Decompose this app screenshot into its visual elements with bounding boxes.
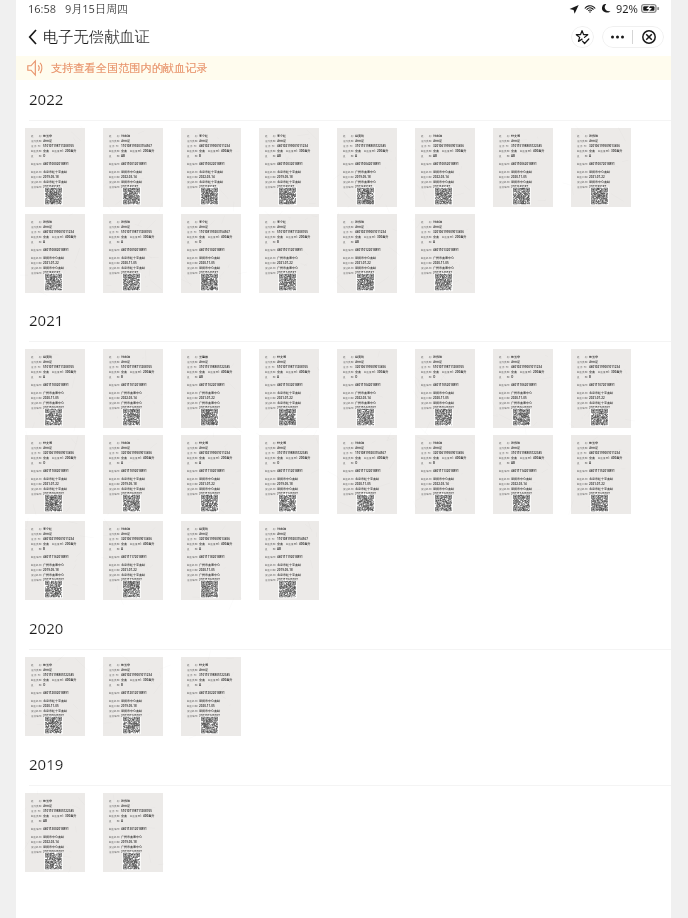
- staticText: 姓 名:: [109, 134, 120, 137]
- button[interactable]: 姓 名:: [337, 128, 397, 207]
- staticText: 身份证: [121, 225, 130, 229]
- button[interactable]: Favorite: [571, 26, 594, 48]
- button[interactable]: 姓 名:: [25, 435, 85, 514]
- button[interactable]: 姓 名:: [571, 435, 631, 514]
- staticText: 深圳市中心血站: [433, 401, 454, 405]
- button[interactable]: 姓 名:: [493, 128, 553, 207]
- staticText: 深圳市中心血站: [589, 170, 610, 174]
- staticText: 320110049187: [43, 406, 64, 410]
- button[interactable]: 姓 名:: [259, 128, 319, 207]
- staticText: B: [589, 375, 591, 379]
- button[interactable]: 姓 名:: [259, 214, 319, 293]
- button[interactable]: 姓 名:: [337, 214, 397, 293]
- button[interactable]: 姓 名:: [259, 435, 319, 514]
- staticText: 血 型:: [187, 154, 198, 157]
- staticText: A: [43, 240, 46, 244]
- button[interactable]: 姓 名:: [415, 349, 475, 428]
- staticText: 献血日期:: [31, 704, 42, 707]
- staticText: 姓 名:: [343, 355, 354, 358]
- staticText: 献血机构:: [421, 391, 432, 394]
- staticText: 证书编号:: [499, 185, 510, 188]
- staticText: 北京市红十字血站: [43, 709, 67, 713]
- button[interactable]: 姓 名:: [103, 435, 163, 514]
- staticText: 发证机构:: [109, 180, 120, 183]
- staticText: 2019-05-18: [355, 175, 371, 179]
- button[interactable]: 姓 名:: [181, 657, 241, 736]
- staticText: 证书编号:: [109, 271, 120, 274]
- button[interactable]: 姓 名:: [25, 793, 85, 872]
- staticText: 440111042018891: [355, 383, 381, 387]
- button[interactable]: 姓 名:: [25, 214, 85, 293]
- button[interactable]: 姓 名:: [415, 128, 475, 207]
- button[interactable]: 姓 名:: [181, 521, 241, 600]
- staticText: 200毫升: [221, 456, 233, 460]
- staticText: 2019-05-18: [277, 568, 293, 572]
- button[interactable]: 姓 名:: [571, 128, 631, 207]
- staticText: 献血机构:: [187, 256, 198, 259]
- staticText: 证书编号:: [421, 492, 432, 495]
- staticText: 110108199203154567: [199, 230, 230, 234]
- button[interactable]: More options: [602, 26, 664, 48]
- staticText: 证件类型:: [577, 139, 588, 142]
- staticText: 证件类型:: [265, 360, 276, 363]
- staticText: 2022: [29, 89, 64, 109]
- button[interactable]: 电子无偿献血证: [28, 27, 151, 46]
- staticText: 全血: [277, 370, 283, 374]
- staticText: 证 件 号:: [31, 451, 41, 454]
- staticText: 姓 名:: [421, 134, 432, 137]
- button[interactable]: 姓 名:: [103, 521, 163, 600]
- staticText: 300毫升: [455, 149, 467, 153]
- button[interactable]: 姓 名:: [181, 349, 241, 428]
- button[interactable]: 姓 名:: [259, 521, 319, 600]
- button[interactable]: 姓 名:: [103, 349, 163, 428]
- staticText: 广州市血液中心: [199, 573, 220, 577]
- button[interactable]: 姓 名:: [493, 349, 553, 428]
- staticText: 证 件 号:: [499, 365, 509, 368]
- staticText: 全血: [121, 370, 127, 374]
- staticText: B: [433, 461, 435, 465]
- staticText: 献血编号:: [109, 383, 120, 386]
- staticText: 证书编号:: [31, 406, 42, 409]
- staticText: 全血: [43, 814, 49, 818]
- staticText: 32011349187: [433, 271, 452, 275]
- staticText: 北京市红十字血站: [277, 573, 301, 577]
- button[interactable]: 姓 名:: [103, 793, 163, 872]
- staticText: 证 件 号:: [343, 451, 353, 454]
- button[interactable]: 姓 名:: [25, 349, 85, 428]
- staticText: 身份证: [433, 225, 442, 229]
- staticText: 北京市红十字血站: [589, 401, 613, 405]
- button[interactable]: 姓 名:: [337, 435, 397, 514]
- button[interactable]: 姓 名:: [181, 128, 241, 207]
- staticText: 320106199509013456: [199, 537, 230, 541]
- button[interactable]: 姓 名:: [25, 521, 85, 600]
- staticText: 献血类型:: [187, 370, 198, 373]
- staticText: 献血编号:: [265, 469, 276, 472]
- staticText: 北京市红十字血站: [43, 487, 67, 491]
- staticText: 身份证: [43, 360, 52, 364]
- staticText: 广州市血液中心: [121, 391, 142, 395]
- button[interactable]: 姓 名:: [181, 214, 241, 293]
- staticText: 全血: [511, 149, 517, 153]
- button[interactable]: 姓 名:: [25, 128, 85, 207]
- staticText: 全血: [121, 235, 127, 239]
- staticText: A: [43, 375, 46, 379]
- button[interactable]: 姓 名:: [103, 214, 163, 293]
- button[interactable]: 姓 名:: [571, 349, 631, 428]
- staticText: 广州市血液中心: [121, 845, 142, 849]
- button[interactable]: 姓 名:: [103, 657, 163, 736]
- button[interactable]: 姓 名:: [181, 435, 241, 514]
- staticText: 320106199509013456: [355, 365, 386, 369]
- staticText: 400毫升: [143, 542, 155, 546]
- button[interactable]: 姓 名:: [25, 657, 85, 736]
- button[interactable]: 姓 名:: [259, 349, 319, 428]
- staticText: 发证机构:: [109, 573, 120, 576]
- staticText: 献血日期:: [421, 482, 432, 485]
- button[interactable]: 姓 名:: [415, 435, 475, 514]
- staticText: 2020-11-05: [121, 261, 137, 265]
- staticText: 深圳市中心血站: [277, 477, 298, 481]
- button[interactable]: 姓 名:: [493, 435, 553, 514]
- button[interactable]: 姓 名:: [337, 349, 397, 428]
- button[interactable]: 姓 名:: [103, 128, 163, 207]
- staticText: 320110749187: [589, 406, 610, 410]
- button[interactable]: 姓 名:: [415, 214, 475, 293]
